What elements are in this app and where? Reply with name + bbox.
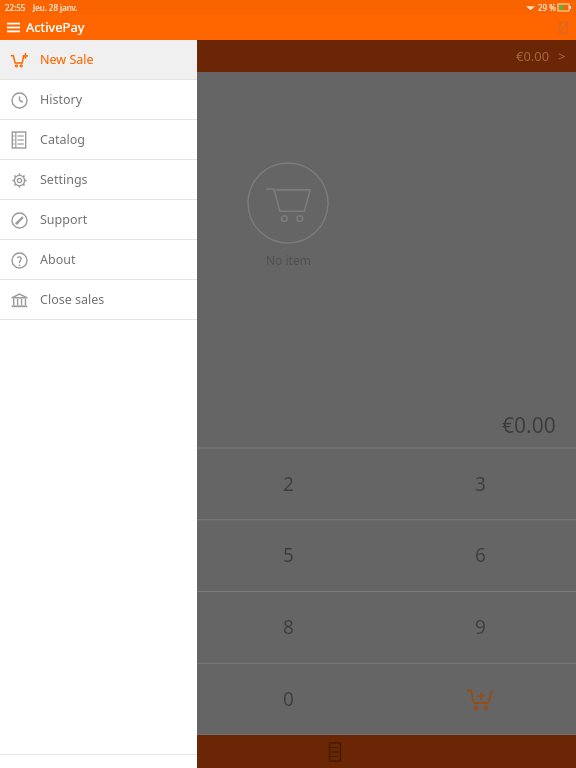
staticText: 6	[475, 542, 486, 568]
staticText: €0.00	[516, 47, 550, 65]
button[interactable]: About	[0, 240, 197, 279]
button[interactable]: Support	[0, 200, 197, 239]
staticText: About	[40, 251, 76, 268]
staticText: New Sale	[40, 51, 94, 68]
button[interactable]: History	[0, 80, 197, 119]
staticText: History	[40, 91, 83, 108]
button[interactable]: Close sales	[0, 280, 197, 319]
staticText: Settings	[40, 171, 88, 188]
staticText: 29 %	[538, 2, 556, 13]
button[interactable]: Menu	[0, 735, 92, 768]
staticText: 9	[475, 614, 486, 640]
staticText: 8	[283, 614, 294, 640]
other: Catalog	[326, 743, 344, 761]
staticText: 5	[283, 542, 294, 568]
staticText: Jeu. 28 janv.	[33, 2, 78, 13]
button[interactable]: 5	[192, 519, 384, 591]
staticText: Catalog	[40, 131, 85, 148]
staticText: €0.00	[502, 411, 556, 440]
button[interactable]: Catalog	[93, 735, 576, 768]
button[interactable]: Add to cart	[384, 663, 576, 735]
staticText: ActivePay	[26, 18, 85, 36]
staticText: 3	[475, 471, 486, 497]
button[interactable]: 0	[192, 663, 384, 735]
button[interactable]: New Sale	[0, 40, 197, 79]
staticText: >	[558, 47, 566, 65]
staticText: 0	[283, 686, 294, 712]
button[interactable]: Offline	[550, 14, 576, 40]
staticText: Close sales	[40, 291, 105, 308]
staticText: Support	[40, 211, 88, 228]
button[interactable]: Catalog	[0, 120, 197, 159]
other: Add to cart	[467, 686, 493, 712]
button[interactable]: 8	[192, 591, 384, 663]
button[interactable]: €0.00	[0, 40, 576, 72]
button[interactable]: 2	[192, 448, 384, 519]
button[interactable]: Settings	[0, 160, 197, 199]
staticText: 22:55	[5, 2, 26, 13]
staticText: 2	[283, 471, 294, 497]
staticText: No item	[266, 252, 311, 268]
button[interactable]: 9	[384, 591, 576, 663]
button[interactable]: Open navigation drawer	[0, 14, 26, 40]
